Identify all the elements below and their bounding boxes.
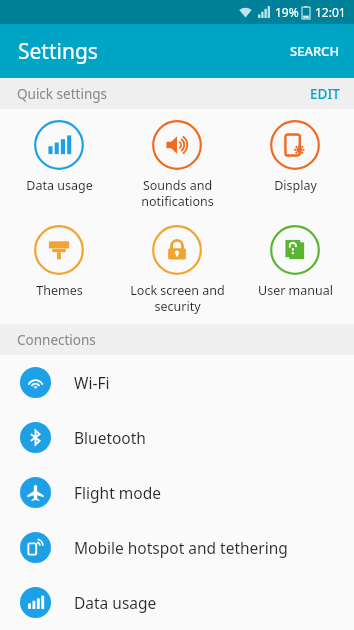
staticText: Themes — [36, 282, 83, 299]
staticText: Data usage — [26, 177, 93, 194]
button[interactable]: Lock screen and security — [118, 221, 236, 318]
staticText: 19% — [275, 4, 299, 20]
staticText: Quick settings — [17, 85, 107, 103]
button[interactable]: Data usage — [0, 575, 354, 630]
staticText: Sounds and notifications — [141, 177, 214, 209]
staticText: 12:01 — [315, 4, 346, 20]
button[interactable]: SEARCH — [276, 30, 354, 72]
staticText: Bluetooth — [74, 427, 146, 448]
staticText: Mobile hotspot and tethering — [74, 537, 288, 558]
button[interactable]: Display — [236, 116, 354, 198]
button[interactable]: Themes — [0, 221, 118, 303]
button[interactable]: Mobile hotspot and tethering — [0, 520, 354, 575]
staticText: Settings — [18, 37, 98, 66]
button[interactable]: Bluetooth — [0, 410, 354, 465]
staticText: Connections — [17, 331, 96, 349]
staticText: Lock screen and security — [130, 282, 225, 314]
button[interactable]: User manual — [236, 221, 354, 303]
staticText: User manual — [258, 282, 333, 299]
staticText: Flight mode — [74, 482, 161, 503]
button[interactable]: Sounds and notifications — [118, 116, 236, 213]
staticText: EDIT — [310, 85, 340, 103]
button[interactable]: Data usage — [0, 116, 118, 198]
button[interactable]: EDIT — [296, 79, 354, 109]
button[interactable]: Wi-Fi — [0, 355, 354, 410]
staticText: SEARCH — [290, 42, 340, 60]
button[interactable]: Flight mode — [0, 465, 354, 520]
staticText: Data usage — [74, 592, 157, 613]
staticText: Wi-Fi — [74, 372, 110, 393]
staticText: Display — [274, 177, 317, 194]
